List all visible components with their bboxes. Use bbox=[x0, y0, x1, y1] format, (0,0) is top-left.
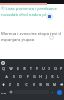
staticText: Q bbox=[2, 66, 5, 70]
staticText: H bbox=[39, 74, 42, 78]
button[interactable]: Z bbox=[6, 80, 14, 88]
staticText: M bbox=[53, 82, 56, 86]
staticText: N bbox=[46, 82, 49, 86]
button[interactable]: T bbox=[28, 64, 34, 72]
button[interactable]: X bbox=[14, 80, 22, 88]
staticText: W bbox=[9, 66, 13, 70]
button[interactable]: J bbox=[43, 72, 49, 80]
button[interactable]: I bbox=[46, 64, 52, 72]
staticText: . bbox=[52, 90, 53, 94]
button[interactable]: Backspace bbox=[58, 80, 64, 88]
button[interactable]: U bbox=[40, 64, 46, 72]
staticText: Y bbox=[36, 66, 38, 70]
staticText: K bbox=[51, 74, 54, 78]
staticText: S bbox=[13, 74, 15, 78]
staticText: nusadab sfnd nadea pl bbox=[1, 12, 46, 18]
button[interactable]: K bbox=[49, 72, 55, 80]
button[interactable]: Google bbox=[1, 61, 5, 65]
button[interactable]: R bbox=[21, 64, 28, 72]
staticText: O bbox=[54, 66, 57, 70]
button[interactable]: G bbox=[31, 72, 37, 80]
button[interactable]: B bbox=[37, 80, 44, 88]
button[interactable]: E bbox=[14, 64, 21, 72]
staticText: © Lista pozivnica i predstave bbox=[1, 6, 57, 12]
staticText: C bbox=[25, 82, 28, 86]
button[interactable]: Emoji bbox=[8, 88, 13, 96]
button[interactable]: A bbox=[3, 72, 10, 80]
staticText: F bbox=[27, 74, 29, 78]
staticText: B bbox=[39, 82, 42, 86]
staticText: V bbox=[33, 82, 35, 86]
button[interactable]: . bbox=[50, 88, 55, 96]
staticText: R bbox=[23, 66, 26, 70]
button[interactable]: Shift bbox=[0, 80, 6, 88]
button[interactable]: W bbox=[7, 64, 14, 72]
staticText: Moreua i zvnecina etopa tesi d bbox=[1, 31, 61, 37]
button[interactable]: O bbox=[52, 64, 58, 72]
button[interactable]: S bbox=[10, 72, 17, 80]
staticText: I bbox=[48, 66, 50, 70]
button[interactable]: P bbox=[58, 64, 64, 72]
button[interactable]: F bbox=[24, 72, 31, 80]
staticText: G bbox=[33, 74, 36, 78]
staticText: P bbox=[60, 66, 62, 70]
button[interactable]: Attachment bbox=[46, 13, 53, 20]
button[interactable]: D bbox=[17, 72, 24, 80]
button[interactable]: V bbox=[30, 80, 37, 88]
button[interactable]: N bbox=[44, 80, 51, 88]
button[interactable]: H bbox=[37, 72, 43, 80]
staticText: ?123 bbox=[1, 91, 7, 94]
staticText: T bbox=[30, 66, 32, 70]
button[interactable]: C bbox=[22, 80, 30, 88]
staticText: A bbox=[5, 74, 8, 78]
staticText: Z bbox=[9, 82, 11, 86]
staticText: L bbox=[57, 74, 59, 78]
button[interactable]: ?123 bbox=[0, 88, 8, 96]
staticText: E bbox=[17, 66, 19, 70]
button[interactable]: Y bbox=[34, 64, 40, 72]
button[interactable]: L bbox=[55, 72, 61, 80]
button[interactable]: Q bbox=[0, 64, 7, 72]
staticText: D bbox=[19, 74, 22, 78]
button[interactable]: M bbox=[51, 80, 58, 88]
staticText: espanjara jrupaa bbox=[1, 37, 35, 43]
staticText: U bbox=[42, 66, 45, 70]
staticText: J bbox=[46, 74, 47, 78]
staticText: X bbox=[17, 82, 19, 86]
button[interactable]: Send bbox=[55, 88, 64, 96]
